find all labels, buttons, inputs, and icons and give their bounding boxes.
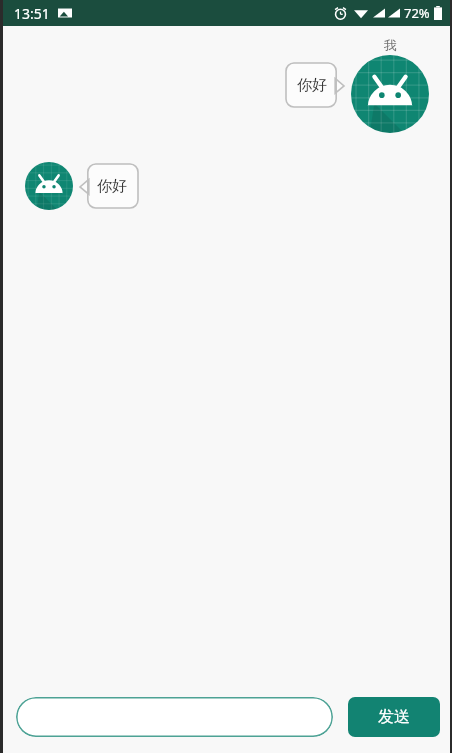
button[interactable]: 你好 <box>286 63 344 107</box>
button[interactable]: My avatar <box>351 55 429 133</box>
staticText: 我 <box>384 37 397 53</box>
button[interactable] <box>16 697 333 737</box>
button[interactable]: 发送 <box>348 697 440 737</box>
button[interactable]: Contact avatar <box>25 162 73 210</box>
button[interactable]: 你好 <box>80 164 138 208</box>
staticText: 发送 <box>378 707 410 727</box>
staticText: 你好 <box>297 76 327 95</box>
staticText: 13:51 <box>14 4 50 23</box>
staticText: 你好 <box>97 177 127 196</box>
staticText: 72% <box>404 4 430 22</box>
